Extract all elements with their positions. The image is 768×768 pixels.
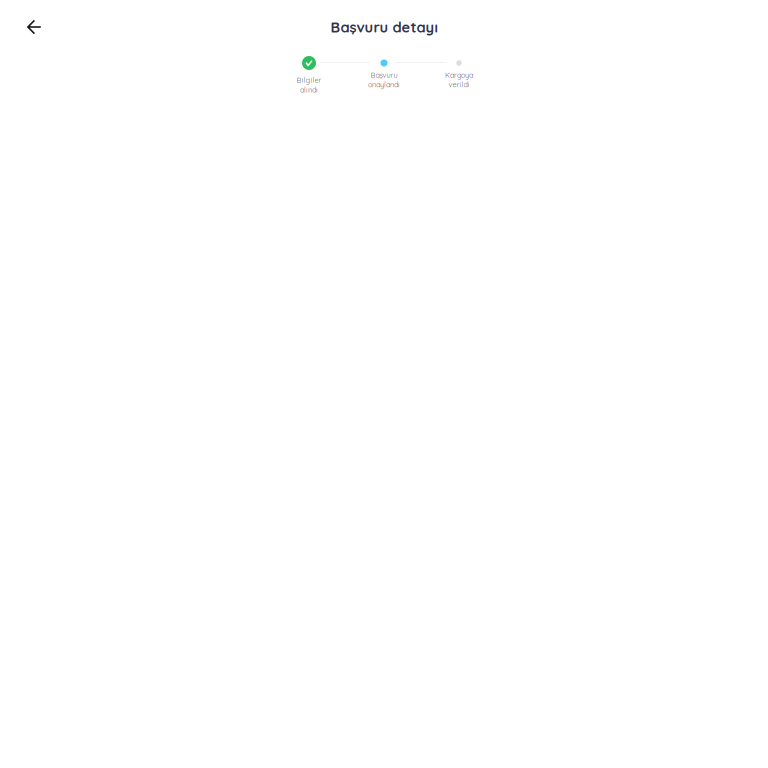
staticText: Başvuru	[370, 70, 397, 79]
staticText: alındı	[300, 85, 318, 94]
staticText: verildi	[448, 80, 469, 89]
button[interactable]: Back	[0, 9, 56, 44]
staticText: Kargoya	[445, 70, 473, 79]
staticText: Başvuru detayı	[330, 18, 437, 36]
staticText: Bilgiler	[296, 75, 321, 85]
staticText: onaylandı	[368, 80, 400, 89]
